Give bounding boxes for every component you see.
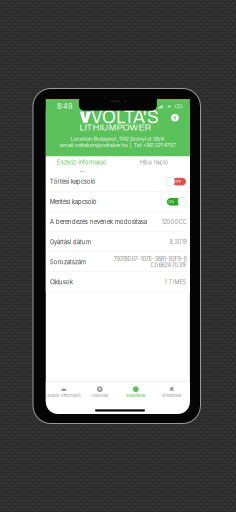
staticText: A berendezés nevének módosítása	[50, 218, 147, 225]
staticText: 8.2019	[169, 239, 186, 245]
staticText: Eszköz-információ	[57, 159, 107, 166]
staticText: Töltési kapcsoló	[50, 178, 96, 185]
staticText: C066247031F	[150, 262, 186, 269]
button[interactable]: Eszköz-információ	[46, 382, 82, 402]
staticText: Ciklusok	[50, 278, 73, 286]
staticText: Merítési kapcsoló	[50, 198, 97, 205]
button[interactable]: Eszköz-információ	[46, 156, 118, 172]
staticText: Beállítások	[126, 393, 145, 398]
staticText: Cella lista	[91, 393, 108, 398]
button[interactable]	[46, 212, 190, 232]
button[interactable]: On	[164, 196, 188, 208]
staticText: email: voltakon@voltaker.hu | Tel: +361 …	[60, 142, 176, 148]
button[interactable]	[46, 172, 190, 192]
button[interactable]: Beállítások	[118, 382, 154, 402]
staticText: LITHIUMPOWER	[79, 122, 151, 132]
button[interactable]: Cella lista	[82, 382, 118, 402]
button[interactable]	[46, 272, 190, 292]
button[interactable]: Bluetooth	[169, 112, 180, 123]
button[interactable]	[46, 252, 190, 272]
staticText: Eszköz-információ	[47, 393, 80, 398]
staticText: Hiba napló	[139, 159, 168, 166]
staticText: 1 TIMES	[164, 279, 186, 286]
staticText: ON	[168, 199, 174, 204]
staticText: Értesítések	[162, 393, 181, 398]
staticText: Gyártási dátum	[50, 238, 91, 246]
staticText: VOLTA'S	[91, 108, 159, 127]
staticText: 79318D07-107E-3881-92F9-6	[113, 256, 186, 262]
staticText: Sorozatszám	[50, 258, 86, 266]
button[interactable]	[46, 232, 190, 252]
staticText: OFF	[174, 179, 181, 184]
staticText: 8:49	[57, 102, 72, 111]
staticText: Location: Budapest, 1142 Szonyi ut 38/A	[71, 136, 165, 142]
staticText: 12000CC	[161, 218, 186, 225]
button[interactable]: Off	[164, 176, 188, 188]
button[interactable]	[46, 192, 190, 212]
button[interactable]: Hiba napló	[118, 156, 190, 172]
button[interactable]: Értesítések	[154, 382, 190, 402]
